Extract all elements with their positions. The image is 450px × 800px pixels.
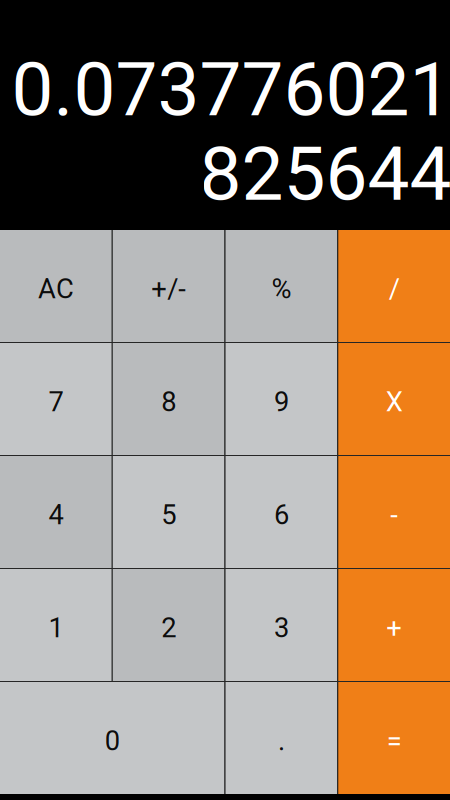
button[interactable]: Equals: [338, 682, 450, 794]
button[interactable]: Multiply: [338, 343, 450, 455]
staticText: .: [278, 725, 285, 757]
staticText: 0.073776021825644: [11, 46, 450, 218]
button[interactable]: Plus minus: [113, 230, 225, 342]
staticText: +/-: [151, 273, 186, 305]
button[interactable]: 9: [225, 343, 337, 455]
button[interactable]: 3: [225, 569, 337, 681]
staticText: 4: [48, 499, 63, 531]
button[interactable]: Decimal point: [225, 682, 337, 794]
staticText: /: [389, 273, 400, 305]
button[interactable]: Plus: [338, 569, 450, 681]
staticText: AC: [38, 273, 74, 305]
button[interactable]: 2: [113, 569, 225, 681]
staticText: 6: [274, 499, 289, 531]
button[interactable]: 5: [113, 456, 225, 568]
button[interactable]: 6: [225, 456, 337, 568]
button[interactable]: Minus: [338, 456, 450, 568]
staticText: 7: [48, 386, 63, 418]
staticText: X: [386, 386, 403, 418]
staticText: -: [390, 499, 398, 531]
staticText: 9: [274, 386, 289, 418]
button[interactable]: 1: [0, 569, 112, 681]
button[interactable]: Divide: [338, 230, 450, 342]
staticText: =: [387, 725, 402, 757]
staticText: 0: [105, 725, 120, 757]
button[interactable]: 4: [0, 456, 112, 568]
button[interactable]: 0: [0, 682, 224, 794]
staticText: 1: [48, 612, 63, 644]
button[interactable]: Percent: [225, 230, 337, 342]
staticText: 8: [161, 386, 176, 418]
staticText: 2: [161, 612, 176, 644]
staticText: %: [271, 273, 291, 305]
button[interactable]: 8: [113, 343, 225, 455]
staticText: +: [386, 612, 402, 644]
staticText: 3: [274, 612, 289, 644]
button[interactable]: 7: [0, 343, 112, 455]
button[interactable]: All clear: [0, 230, 112, 342]
staticText: 5: [161, 499, 176, 531]
